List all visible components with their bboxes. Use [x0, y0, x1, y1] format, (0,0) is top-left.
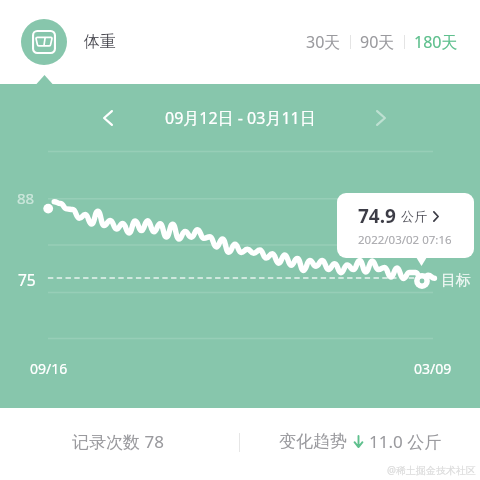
staticText: 03/09 [414, 359, 452, 378]
staticText: 变化趋势 [279, 431, 347, 452]
button[interactable]: Previous period [90, 100, 126, 136]
staticText: 目标 [441, 271, 471, 290]
staticText: @稀土掘金技术社区 [387, 463, 476, 477]
staticText: 90天 [360, 31, 395, 53]
button[interactable]: 74.9 [337, 193, 474, 258]
staticText: 2022/03/02 07:16 [358, 232, 452, 248]
staticText: 09/16 [30, 359, 68, 378]
staticText: 09月12日 - 03月11日 [165, 107, 316, 129]
staticText: 75 [18, 269, 36, 290]
staticText: 11.0 公斤 [369, 430, 442, 453]
staticText: 180天 [414, 31, 458, 53]
button[interactable]: 180天 [405, 22, 467, 62]
button[interactable]: 30天 [297, 22, 350, 62]
staticText: 74.9 [358, 203, 396, 229]
button[interactable]: 变化趋势 [267, 424, 454, 458]
button[interactable]: 09月12日 - 03月11日 [0, 100, 480, 136]
staticText: 记录次数 78 [72, 430, 164, 453]
button[interactable]: Weight scale [21, 19, 67, 65]
button[interactable]: 记录次数 78 [60, 424, 164, 458]
staticText: 公斤 [401, 208, 427, 224]
button[interactable]: Next period [363, 100, 399, 136]
staticText: 88 [17, 188, 35, 208]
button[interactable]: 90天 [351, 22, 404, 62]
staticText: 体重 [84, 32, 116, 52]
staticText: 30天 [306, 31, 341, 53]
